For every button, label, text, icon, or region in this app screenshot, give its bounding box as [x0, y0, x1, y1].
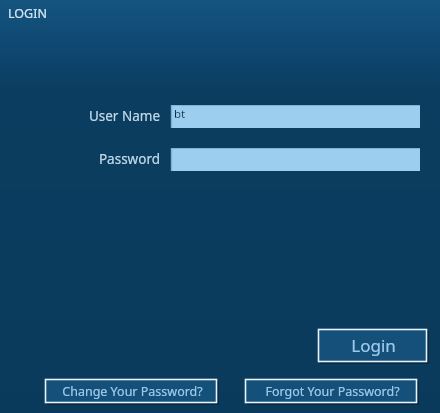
button[interactable]: Login — [318, 329, 429, 364]
staticText: bt — [174, 106, 186, 122]
staticText: Login — [351, 334, 396, 357]
button[interactable]: Text field — [171, 148, 420, 171]
staticText: Password — [98, 150, 160, 168]
button[interactable]: Forgot Your Password? — [245, 379, 419, 405]
button[interactable]: Change Your Password? — [45, 379, 219, 405]
staticText: Change Your Password? — [62, 383, 203, 400]
staticText: User Name — [88, 107, 160, 125]
staticText: LOGIN — [8, 5, 47, 22]
button[interactable]: Text field — [171, 105, 420, 128]
staticText: Forgot Your Password? — [265, 383, 400, 400]
